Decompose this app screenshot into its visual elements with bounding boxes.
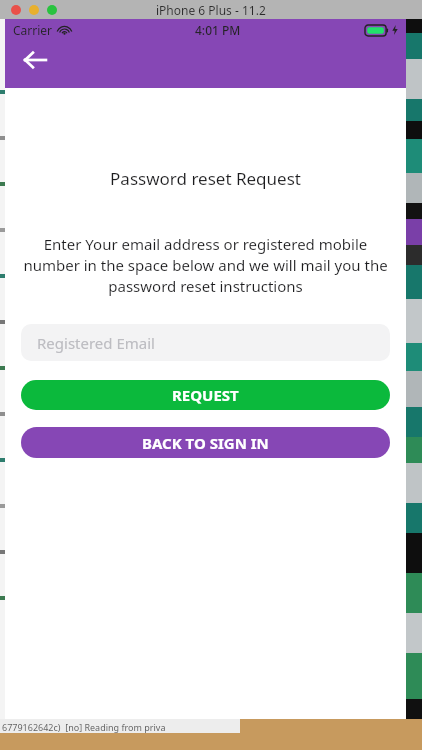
button[interactable]: Back xyxy=(15,40,55,80)
staticText: REQUEST xyxy=(172,385,239,405)
button[interactable]: BACK TO SIGN IN xyxy=(21,427,390,458)
staticText: 4:01 PM xyxy=(195,22,241,38)
button[interactable]: REQUEST xyxy=(21,380,390,410)
staticText: Registered Email xyxy=(37,333,155,353)
button[interactable]: Registered Email xyxy=(21,324,390,361)
staticText: Password reset Request xyxy=(5,167,406,190)
staticText: Carrier xyxy=(13,22,53,38)
staticText: BACK TO SIGN IN xyxy=(142,433,269,453)
staticText: 6779162642c) [no] Reading from priva xyxy=(2,721,166,733)
staticText: iPhone 6 Plus - 11.2 xyxy=(156,2,266,18)
staticText: Enter Your email address or registered m… xyxy=(16,234,395,297)
